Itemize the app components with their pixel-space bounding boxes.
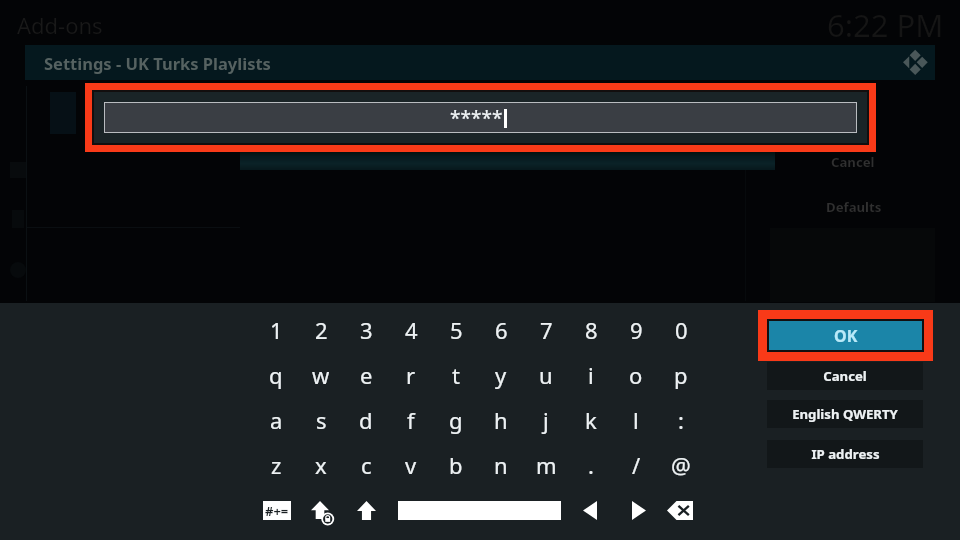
staticText: :: [678, 405, 684, 435]
button[interactable]: l: [615, 400, 657, 440]
button[interactable]: Backspace: [667, 501, 693, 520]
staticText: o: [629, 360, 643, 390]
button[interactable]: m: [525, 445, 567, 485]
button[interactable]: y: [480, 355, 522, 395]
button[interactable]: c: [345, 445, 387, 485]
staticText: c: [361, 450, 372, 480]
button[interactable]: x: [300, 445, 342, 485]
staticText: x: [315, 450, 327, 480]
button[interactable]: 1: [255, 310, 297, 350]
button[interactable]: Caps lock: [309, 501, 335, 526]
button[interactable]: q: [255, 355, 297, 395]
staticText: y: [495, 360, 507, 390]
staticText: 9: [630, 315, 643, 345]
button[interactable]: .: [570, 445, 612, 485]
button[interactable]: /: [615, 445, 657, 485]
button[interactable]: b: [435, 445, 477, 485]
staticText: IP address: [811, 445, 880, 463]
staticText: s: [316, 405, 327, 435]
button[interactable]: h: [480, 400, 522, 440]
staticText: h: [494, 405, 508, 435]
staticText: u: [539, 360, 553, 390]
button[interactable]: @: [660, 445, 702, 485]
staticText: English QWERTY: [792, 405, 898, 423]
staticText: v: [405, 450, 417, 480]
staticText: n: [494, 450, 508, 480]
staticText: 1: [270, 315, 283, 345]
button[interactable]: 7: [525, 310, 567, 350]
button[interactable]: Settings - UK Turks Playlists: [25, 45, 935, 80]
staticText: Settings - UK Turks Playlists: [44, 52, 271, 74]
staticText: w: [312, 360, 330, 390]
button[interactable]: p: [660, 355, 702, 395]
staticText: g: [449, 405, 463, 435]
staticText: /: [632, 450, 641, 480]
button[interactable]: j: [525, 400, 567, 440]
button[interactable]: k: [570, 400, 612, 440]
button[interactable]: s: [300, 400, 342, 440]
button[interactable]: 6: [480, 310, 522, 350]
button[interactable]: 0: [660, 310, 702, 350]
staticText: OK: [834, 325, 858, 347]
staticText: 8: [585, 315, 598, 345]
button[interactable]: Symbols: [263, 501, 291, 520]
button[interactable]: r: [390, 355, 432, 395]
staticText: z: [271, 450, 282, 480]
button[interactable]: 3: [345, 310, 387, 350]
staticText: r: [406, 360, 416, 390]
staticText: .: [588, 450, 594, 480]
button[interactable]: n: [480, 445, 522, 485]
staticText: Add-ons: [17, 10, 103, 40]
staticText: j: [543, 405, 549, 435]
button[interactable]: z: [255, 445, 297, 485]
button[interactable]: u: [525, 355, 567, 395]
staticText: 2: [315, 315, 328, 345]
staticText: 5: [450, 315, 463, 345]
button[interactable]: Shift: [357, 501, 376, 520]
other: Kodi: [901, 49, 928, 76]
button[interactable]: 2: [300, 310, 342, 350]
button[interactable]: *****: [94, 92, 867, 143]
staticText: 0: [675, 315, 688, 345]
button[interactable]: f: [390, 400, 432, 440]
staticText: 4: [405, 315, 418, 345]
button[interactable]: English QWERTY: [767, 400, 923, 428]
button[interactable]: 5: [435, 310, 477, 350]
staticText: q: [269, 360, 283, 390]
button[interactable]: Cancel: [767, 362, 923, 390]
staticText: 6:22 PM: [827, 4, 944, 46]
button[interactable]: 8: [570, 310, 612, 350]
staticText: i: [588, 360, 594, 390]
button[interactable]: e: [345, 355, 387, 395]
staticText: l: [633, 405, 639, 435]
staticText: @: [671, 450, 691, 480]
staticText: Defaults: [826, 198, 882, 216]
staticText: *****: [450, 105, 503, 131]
button[interactable]: a: [255, 400, 297, 440]
staticText: #+=: [265, 502, 289, 520]
button[interactable]: :: [660, 400, 702, 440]
button[interactable]: 4: [390, 310, 432, 350]
button[interactable]: g: [435, 400, 477, 440]
button[interactable]: d: [345, 400, 387, 440]
staticText: d: [359, 405, 373, 435]
staticText: Cancel: [831, 153, 875, 171]
button[interactable]: i: [570, 355, 612, 395]
button[interactable]: OK: [769, 321, 922, 350]
button[interactable]: w: [300, 355, 342, 395]
button[interactable]: o: [615, 355, 657, 395]
button[interactable]: IP address: [767, 440, 923, 468]
button[interactable]: 9: [615, 310, 657, 350]
button[interactable]: Move cursor left: [583, 501, 597, 520]
staticText: 3: [360, 315, 373, 345]
staticText: a: [270, 405, 283, 435]
staticText: t: [452, 360, 460, 390]
button[interactable]: v: [390, 445, 432, 485]
staticText: 6: [495, 315, 508, 345]
staticText: p: [674, 360, 688, 390]
staticText: k: [585, 405, 597, 435]
button[interactable]: t: [435, 355, 477, 395]
button[interactable]: Move cursor right: [632, 501, 646, 520]
staticText: Cancel: [823, 367, 867, 385]
